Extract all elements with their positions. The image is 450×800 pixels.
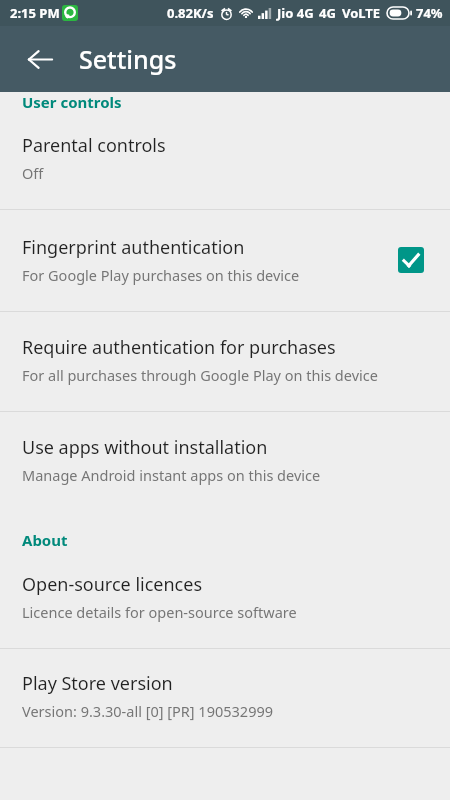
staticText: Require authentication for purchases [22, 335, 336, 360]
button[interactable]: Use apps without installation [0, 412, 450, 511]
button[interactable]: Parental controls [0, 111, 450, 209]
staticText: User controls [22, 92, 122, 111]
staticText: 4G [319, 4, 336, 22]
staticText: Fingerprint authentication [22, 235, 245, 260]
staticText: Use apps without installation [22, 435, 268, 460]
staticText: Version: 9.3.30-all [0] [PR] 190532999 [22, 701, 274, 721]
staticText: 2:15 PM [10, 4, 60, 22]
staticText: 0.82K/s [167, 4, 214, 22]
staticText: For Google Play purchases on this device [22, 265, 300, 285]
staticText: Play Store version [22, 671, 173, 696]
button[interactable]: Fingerprint authentication enabled [396, 245, 426, 275]
staticText: Parental controls [22, 133, 166, 158]
staticText: Settings [79, 42, 177, 76]
staticText: 74% [416, 4, 443, 22]
staticText: Open-source licences [22, 572, 202, 597]
button[interactable]: Open-source licences [0, 550, 450, 648]
staticText: Manage Android instant apps on this devi… [22, 465, 321, 485]
staticText: VoLTE [342, 4, 381, 22]
staticText: Jio 4G [277, 4, 314, 22]
button[interactable]: Require authentication for purchases [0, 312, 450, 411]
staticText: Licence details for open-source software [22, 602, 297, 622]
staticText: About [22, 530, 68, 550]
button[interactable]: Back [18, 37, 62, 81]
button[interactable]: Play Store version [0, 649, 450, 747]
staticText: For all purchases through Google Play on… [22, 365, 378, 385]
staticText: Off [22, 163, 44, 183]
button[interactable]: Fingerprint authentication [0, 210, 450, 311]
